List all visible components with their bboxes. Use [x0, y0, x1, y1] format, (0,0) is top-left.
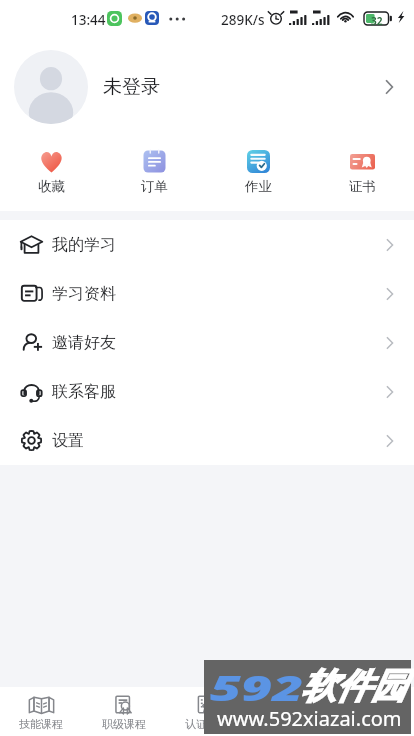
staticText: 认证机构 [185, 717, 229, 731]
button[interactable]: 设置 [0, 416, 414, 465]
button[interactable]: 学习资料 [0, 269, 414, 318]
button[interactable]: 证书 [310, 137, 414, 211]
button[interactable]: 收藏 [0, 137, 103, 211]
staticText: 设置 [52, 431, 84, 451]
staticText: 592 [210, 663, 304, 712]
staticText: 证书 [349, 178, 376, 195]
button[interactable]: 未登录 [0, 37, 414, 137]
staticText: 未登录 [103, 75, 160, 99]
button[interactable]: 职级课程 [82, 687, 165, 736]
button[interactable]: 认证机构 [165, 687, 248, 736]
staticText: 职级课程 [102, 717, 146, 731]
staticText: 联系客服 [52, 382, 116, 402]
button[interactable]: 联系客服 [0, 367, 414, 416]
staticText: 技能课程 [19, 717, 63, 731]
staticText: 289K/s [221, 11, 265, 29]
staticText: 订单 [141, 178, 168, 195]
staticText: 消息 [279, 717, 301, 731]
button[interactable]: 作业 [206, 137, 310, 211]
staticText: 邀请好友 [52, 333, 116, 353]
staticText: 软件园 [301, 664, 406, 708]
staticText: 我的学习 [52, 235, 116, 255]
button[interactable]: 消息 [248, 687, 331, 736]
button[interactable]: 技能课程 [0, 687, 82, 736]
staticText: 32 [371, 14, 383, 28]
staticText: www.592xiazai.com [217, 705, 402, 732]
button[interactable]: 我的 [331, 687, 414, 736]
staticText: 我的 [362, 717, 384, 731]
staticText: 收藏 [38, 178, 65, 195]
button[interactable]: 订单 [103, 137, 206, 211]
staticText: 作业 [245, 178, 272, 195]
staticText: 学习资料 [52, 284, 116, 304]
button[interactable]: 我的学习 [0, 220, 414, 269]
staticText: 13:44 [71, 11, 106, 29]
button[interactable]: 邀请好友 [0, 318, 414, 367]
